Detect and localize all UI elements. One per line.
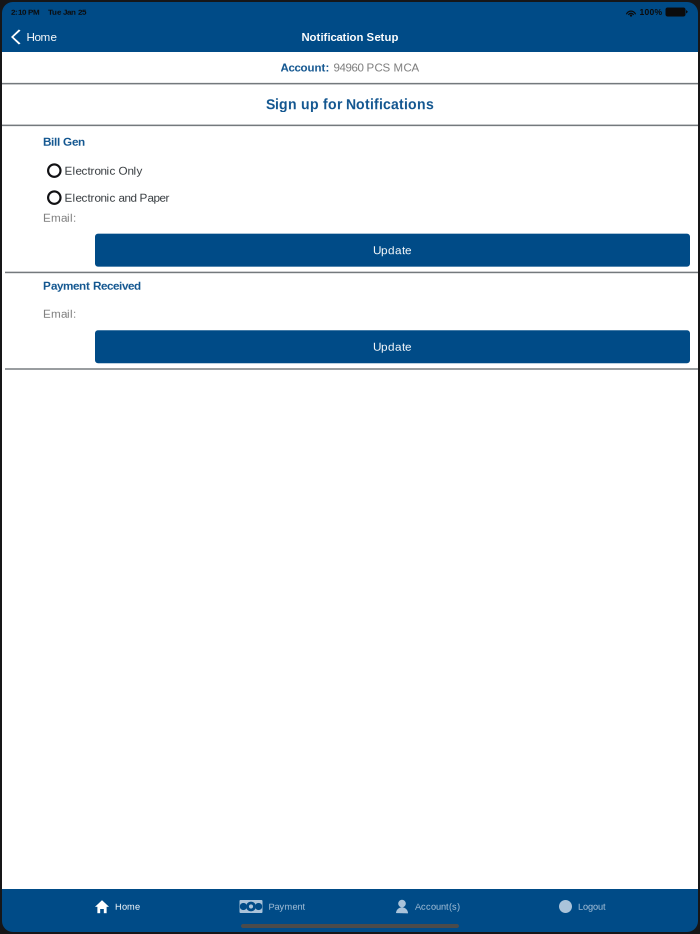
staticText: Account(s) [415, 901, 460, 912]
staticText: Sign up for Notifications [266, 97, 434, 112]
staticText: Update [373, 340, 412, 353]
staticText: 2:10 PM [11, 7, 40, 16]
button[interactable]: Home [40, 886, 195, 926]
staticText: Payment Received [43, 279, 141, 292]
button[interactable]: Electronic Only [2, 157, 698, 184]
button[interactable]: Update [95, 330, 690, 363]
staticText: Email: [43, 307, 76, 320]
staticText: Home [26, 30, 56, 43]
staticText: Update [373, 244, 412, 257]
button[interactable]: Update [95, 234, 690, 267]
staticText: Account: [280, 61, 329, 74]
staticText: Notification Setup [301, 31, 398, 43]
staticText: Logout [578, 901, 606, 912]
button[interactable]: Home [2, 22, 64, 52]
staticText: Tue Jan 25 [48, 7, 86, 16]
button[interactable]: Logout [505, 886, 660, 926]
staticText: Payment [268, 901, 305, 912]
button[interactable]: Electronic and Paper [2, 184, 698, 211]
button[interactable]: Payment [195, 886, 350, 926]
staticText: 100% [639, 7, 662, 17]
button[interactable]: Account(s) [350, 886, 505, 926]
staticText: Home [115, 901, 140, 912]
staticText: Electronic Only [65, 164, 143, 177]
staticText: Bill Gen [43, 135, 85, 148]
staticText: 94960 PCS MCA [333, 61, 419, 74]
staticText: Email: [43, 211, 76, 224]
staticText: Electronic and Paper [65, 191, 170, 204]
